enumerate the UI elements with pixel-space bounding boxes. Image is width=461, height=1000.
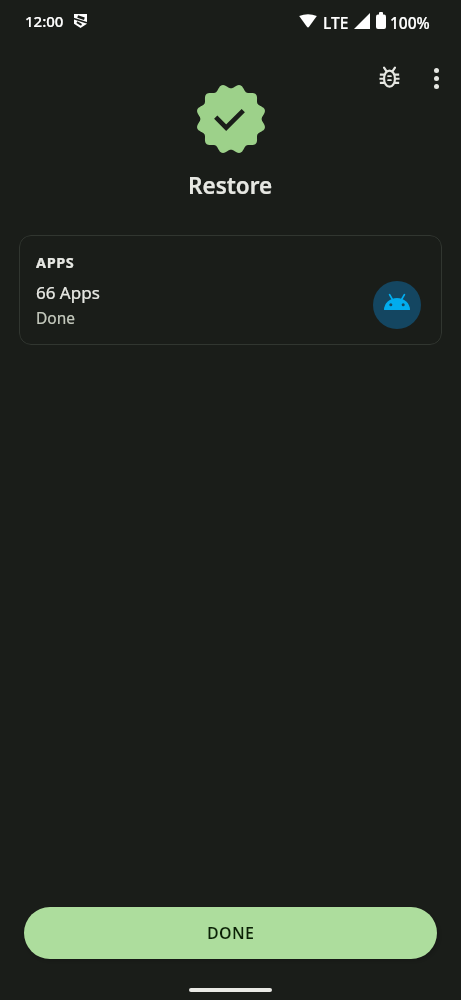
staticText: LTE — [323, 12, 349, 33]
button[interactable]: DONE — [24, 907, 437, 959]
staticText: 66 Apps — [36, 281, 100, 304]
staticText: 100% — [390, 12, 430, 33]
staticText: Done — [36, 307, 76, 328]
button[interactable]: APPS — [19, 235, 442, 345]
staticText: 12:00 — [25, 11, 64, 31]
button[interactable]: Report bug — [367, 55, 411, 99]
staticText: DONE — [207, 922, 255, 944]
staticText: Restore — [188, 170, 273, 201]
staticText: APPS — [36, 252, 75, 272]
button[interactable]: More options — [414, 56, 458, 100]
